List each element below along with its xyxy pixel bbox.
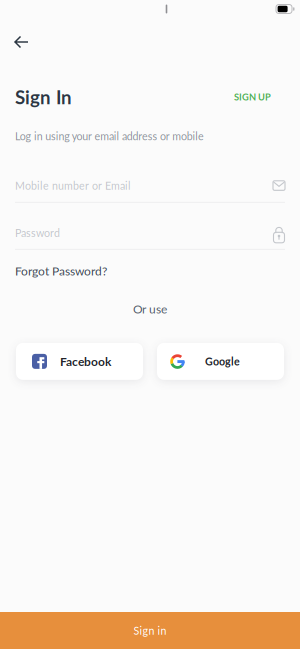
- button[interactable]: Password: [0, 225, 300, 241]
- staticText: Sign In: [15, 86, 72, 108]
- staticText: Google: [205, 355, 240, 368]
- staticText: Forgot Password?: [15, 264, 107, 278]
- staticText: Log in using your email address or mobil…: [15, 130, 204, 142]
- staticText: Or use: [133, 302, 167, 316]
- staticText: Sign in: [133, 624, 166, 637]
- button[interactable]: Forgot Password?: [0, 264, 107, 278]
- staticText: Facebook: [60, 354, 111, 368]
- button[interactable]: Back: [0, 36, 28, 48]
- button[interactable]: Google: [157, 343, 284, 380]
- staticText: SIGN UP: [234, 91, 271, 102]
- button[interactable]: Mobile number or Email: [0, 179, 300, 192]
- staticText: Mobile number or Email: [15, 179, 131, 192]
- button[interactable]: Facebook: [16, 343, 143, 380]
- button[interactable]: SIGN UP: [234, 91, 285, 102]
- staticText: Password: [15, 227, 60, 239]
- button[interactable]: Sign in: [0, 612, 300, 649]
